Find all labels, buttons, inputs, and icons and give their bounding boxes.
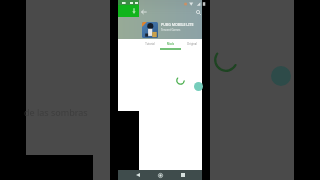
button[interactable]: Home [156,171,164,179]
staticText: PUBG MOBILE LITE [161,22,194,27]
button[interactable]: Original [181,39,202,50]
staticText: Mods [167,42,174,46]
button[interactable]: Mods [160,39,181,50]
button[interactable]: Search [193,7,203,17]
button[interactable]: Tutorial [139,39,160,50]
staticText: de las sombras [24,106,88,118]
button[interactable]: Recents [179,171,187,179]
button[interactable]: Back [139,7,149,17]
button[interactable]: Back [134,171,142,179]
staticText: Tencent Games [161,28,181,32]
button[interactable]: Action [194,82,203,91]
staticText: Tutorial [145,42,155,46]
staticText: Original [187,42,197,46]
